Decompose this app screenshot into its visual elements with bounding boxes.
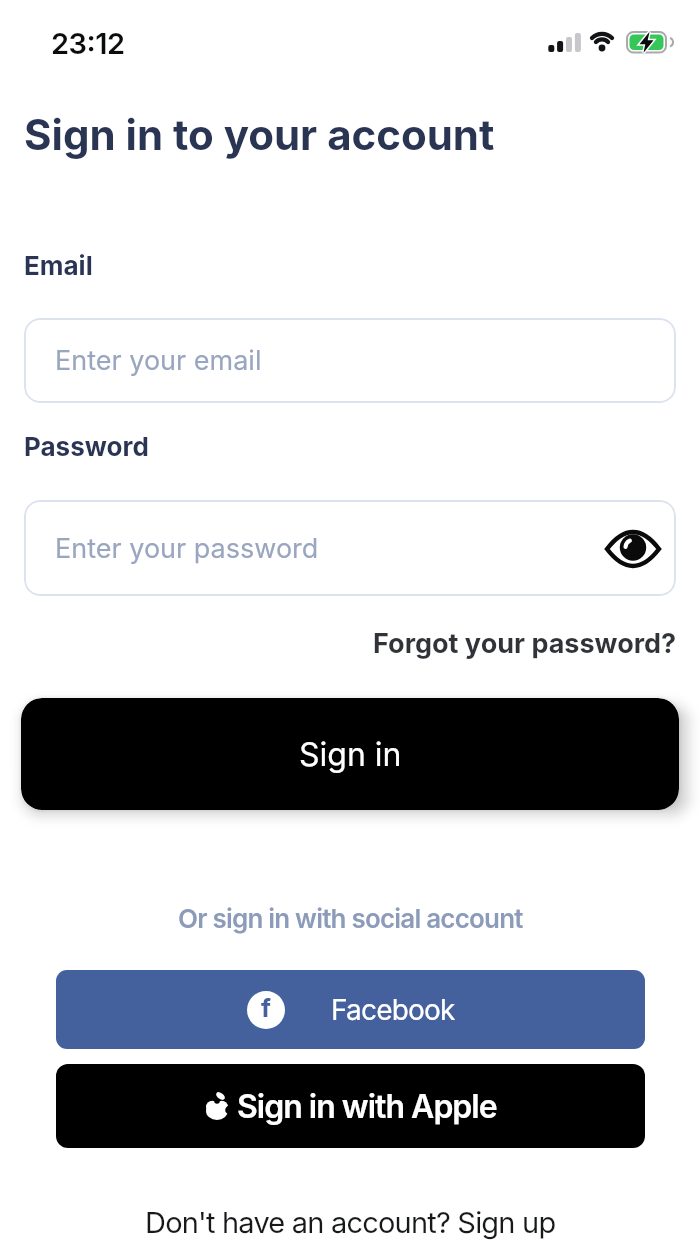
staticText: Or sign in with social account — [178, 903, 523, 934]
staticText: Password — [24, 431, 149, 462]
staticText: Enter your email — [55, 344, 262, 377]
button[interactable]: Enter your email — [24, 318, 676, 403]
staticText: f — [261, 993, 271, 1023]
button[interactable]: f — [56, 970, 645, 1049]
staticText: Sign in with Apple — [237, 1087, 497, 1126]
button[interactable] — [604, 522, 662, 574]
staticText: Email — [24, 250, 93, 281]
staticText: Sign in to your account — [24, 109, 495, 160]
button[interactable]: Don't have an account? Sign up — [145, 1205, 556, 1240]
staticText: 23:12 — [51, 26, 125, 61]
staticText: Facebook — [331, 993, 455, 1027]
button[interactable]: Forgot your password? — [373, 627, 677, 660]
button[interactable]: Enter your password — [24, 500, 676, 596]
staticText: Sign in — [299, 735, 402, 774]
staticText: Enter your password — [55, 532, 319, 565]
button[interactable]: Sign in — [21, 698, 679, 810]
button[interactable]: Sign in with Apple — [56, 1064, 645, 1148]
